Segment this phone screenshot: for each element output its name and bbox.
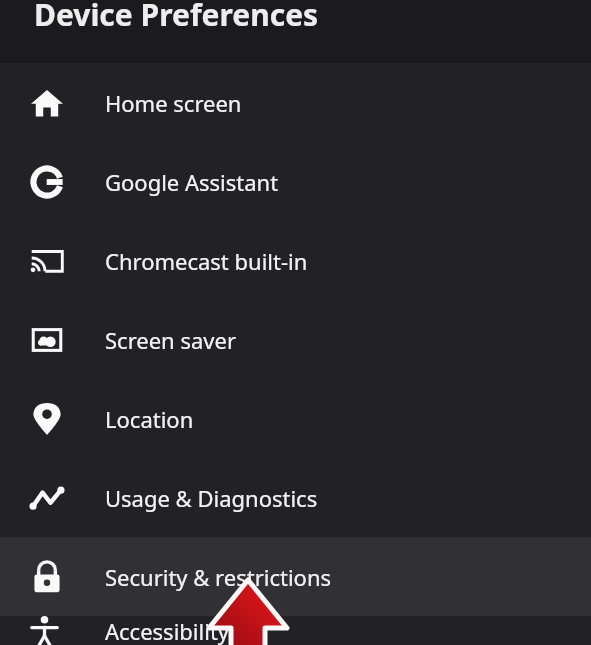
button[interactable]: Security & restrictions: [0, 537, 591, 616]
staticText: Location: [105, 404, 194, 434]
staticText: Device Preferences: [34, 0, 319, 35]
other: Security & restrictions: [30, 560, 64, 594]
button[interactable]: Accessibility: [0, 616, 591, 645]
button[interactable]: Location: [0, 379, 591, 458]
staticText: Usage & Diagnostics: [105, 483, 318, 513]
button[interactable]: Google Assistant: [0, 142, 591, 221]
staticText: Accessibility: [105, 616, 230, 645]
other: Screen saver: [30, 323, 64, 357]
staticText: Home screen: [105, 88, 242, 118]
button[interactable]: Home screen: [0, 63, 591, 142]
staticText: Chromecast built-in: [105, 246, 308, 276]
other: Usage & Diagnostics: [30, 481, 64, 515]
staticText: Screen saver: [105, 325, 236, 355]
other: Accessibility: [30, 616, 64, 645]
staticText: Google Assistant: [105, 167, 279, 197]
staticText: Security & restrictions: [105, 562, 332, 592]
button[interactable]: Chromecast built-in: [0, 221, 591, 300]
other: Google Assistant: [30, 165, 64, 199]
other: Chromecast built-in: [30, 244, 64, 278]
button[interactable]: Usage & Diagnostics: [0, 458, 591, 537]
button[interactable]: Screen saver: [0, 300, 591, 379]
other: Home screen: [30, 86, 64, 120]
other: Location: [30, 402, 64, 436]
